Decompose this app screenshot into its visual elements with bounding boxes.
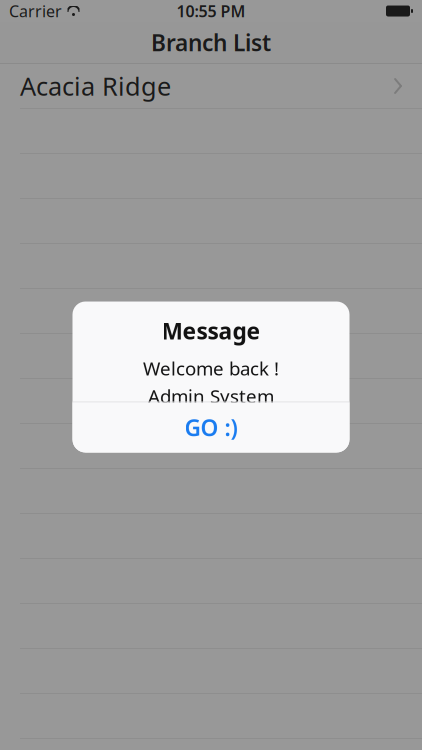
- staticText: Carrier: [9, 0, 62, 22]
- staticText: Message: [161, 316, 260, 346]
- staticText: Acacia Ridge: [20, 69, 171, 103]
- staticText: Branch List: [151, 27, 271, 57]
- staticText: GO :): [184, 412, 237, 442]
- button[interactable]: Acacia Ridge: [0, 64, 422, 109]
- staticText: Admin System: [148, 384, 274, 408]
- button[interactable]: GO :): [72, 402, 349, 452]
- staticText: 10:55 PM: [176, 0, 245, 22]
- staticText: Welcome back !: [143, 356, 279, 381]
